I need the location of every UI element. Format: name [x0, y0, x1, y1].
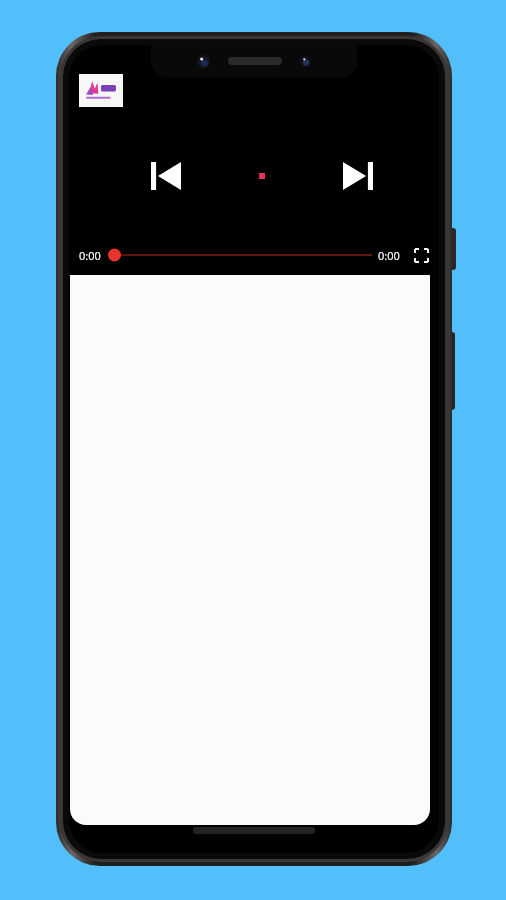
button[interactable]: Fullscreen	[409, 243, 433, 267]
button[interactable]: Channel logo	[79, 74, 123, 107]
button[interactable]: Previous	[143, 153, 189, 199]
button[interactable]: Seek bar	[108, 244, 372, 266]
button[interactable]: Next	[335, 153, 381, 199]
staticText: 0:00	[378, 248, 400, 263]
button[interactable]	[70, 275, 430, 825]
staticText: 0:00	[79, 248, 101, 263]
